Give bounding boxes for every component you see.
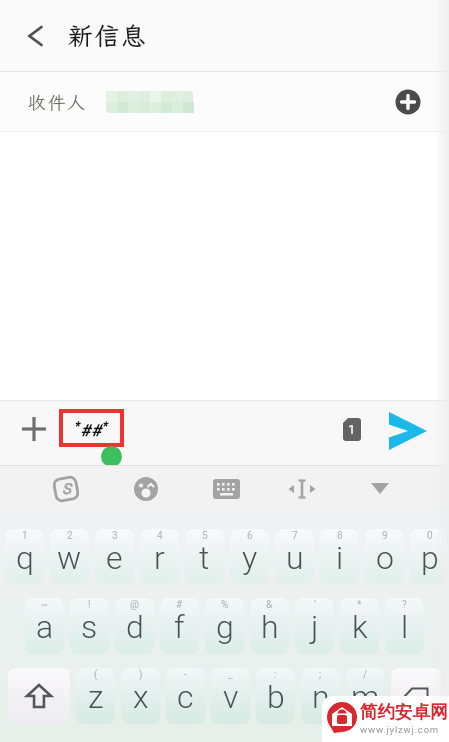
staticText: ) — [139, 669, 143, 681]
staticText: / — [363, 669, 368, 681]
staticText: 8 — [337, 530, 343, 542]
button[interactable]: # — [160, 598, 199, 654]
staticText: 6 — [247, 530, 253, 542]
staticText: h — [261, 608, 279, 646]
staticText: % — [221, 599, 229, 611]
staticText: 4 — [157, 530, 163, 542]
staticText: *##* — [74, 419, 109, 440]
staticText: f — [174, 608, 185, 646]
staticText: j — [311, 608, 319, 646]
button[interactable] — [204, 466, 248, 511]
staticText: i — [336, 539, 344, 577]
staticText: ~ — [41, 599, 48, 611]
staticText: n — [312, 678, 330, 716]
button[interactable]: ( — [76, 668, 115, 724]
button[interactable] — [395, 89, 421, 115]
button[interactable]: S — [44, 466, 88, 511]
staticText: 5 — [202, 530, 208, 542]
button[interactable]: 1 — [5, 529, 44, 584]
staticText: ! — [88, 599, 91, 611]
button[interactable] — [124, 466, 168, 511]
button[interactable]: 4 — [140, 529, 179, 584]
staticText: u — [286, 539, 304, 577]
staticText: 3 — [112, 530, 118, 542]
staticText: 1 — [348, 422, 356, 437]
staticText: ( — [94, 669, 98, 681]
staticText: x — [133, 678, 149, 716]
button[interactable]: 8 — [320, 529, 359, 584]
button[interactable]: 9 — [365, 529, 404, 584]
button[interactable]: ' — [295, 598, 334, 654]
staticText: s — [81, 608, 98, 646]
button[interactable]: / — [346, 668, 385, 724]
button[interactable] — [0, 401, 56, 457]
button[interactable]: * — [340, 598, 379, 654]
button[interactable]: 收件人 — [0, 72, 449, 131]
staticText: a — [36, 608, 54, 646]
staticText: www.jylzwj.com — [360, 724, 439, 735]
staticText: o — [376, 539, 394, 577]
staticText: q — [16, 539, 34, 577]
button[interactable]: 0 — [410, 529, 449, 584]
staticText: g — [216, 608, 234, 646]
staticText: 2 — [67, 530, 73, 542]
staticText: @ — [130, 599, 139, 611]
staticText: * — [357, 599, 362, 611]
staticText: 7 — [292, 530, 298, 542]
staticText: - — [184, 669, 187, 681]
staticText: e — [106, 539, 123, 577]
staticText: z — [88, 678, 104, 716]
staticText: S — [62, 480, 71, 498]
staticText: 简约安卓网 — [360, 701, 448, 723]
staticText: t — [199, 539, 210, 577]
staticText: w — [57, 539, 82, 577]
staticText: 1 — [22, 530, 28, 542]
button[interactable]: 5 — [185, 529, 224, 584]
staticText: l — [401, 608, 409, 646]
button[interactable]: 6 — [230, 529, 269, 584]
button[interactable] — [8, 668, 70, 724]
button[interactable] — [14, 0, 56, 71]
staticText: 新信息 — [68, 19, 148, 52]
button[interactable]: & — [250, 598, 289, 654]
staticText: 9 — [382, 530, 388, 542]
staticText: p — [421, 539, 439, 577]
button[interactable]: ; — [301, 668, 340, 724]
staticText: ; — [319, 669, 322, 681]
button[interactable] — [380, 403, 436, 459]
button[interactable] — [358, 466, 402, 511]
staticText: ? — [402, 599, 407, 611]
staticText: d — [126, 608, 144, 646]
staticText: y — [242, 539, 258, 577]
button[interactable]: 3 — [95, 529, 134, 584]
staticText: c — [177, 678, 194, 716]
button[interactable]: ? — [385, 598, 424, 654]
staticText: m — [351, 678, 380, 716]
staticText: k — [352, 608, 368, 646]
staticText: b — [267, 678, 285, 716]
button[interactable]: : — [256, 668, 295, 724]
staticText: v — [223, 678, 239, 716]
button[interactable]: 7 — [275, 529, 314, 584]
staticText: _ — [228, 669, 233, 681]
button[interactable]: - — [166, 668, 205, 724]
staticText: 收件人 — [28, 90, 87, 114]
button[interactable]: ! — [70, 598, 109, 654]
button[interactable]: @ — [115, 598, 154, 654]
staticText: r — [154, 539, 165, 577]
button[interactable]: ~ — [25, 598, 64, 654]
staticText: 0 — [427, 530, 433, 542]
staticText: ' — [314, 599, 316, 611]
button[interactable]: 2 — [50, 529, 89, 584]
button[interactable]: ) — [121, 668, 160, 724]
button[interactable]: _ — [211, 668, 250, 724]
button[interactable] — [391, 668, 441, 724]
button[interactable]: *##* — [59, 409, 124, 447]
staticText: : — [274, 669, 277, 681]
button[interactable]: % — [205, 598, 244, 654]
button[interactable] — [280, 466, 324, 511]
staticText: # — [176, 599, 183, 611]
staticText: & — [266, 599, 273, 611]
